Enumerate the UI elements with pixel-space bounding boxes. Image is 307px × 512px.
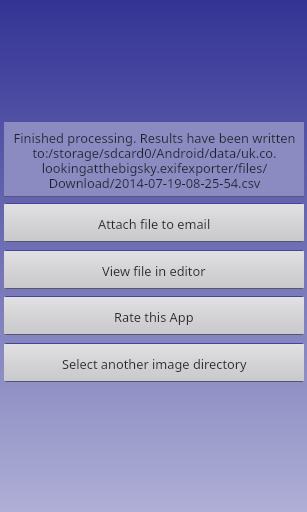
staticText: Select another image directory: [62, 355, 247, 372]
staticText: Finished processing. Results have been w…: [13, 129, 296, 191]
staticText: Attach file to email: [98, 215, 211, 232]
staticText: View file in editor: [102, 262, 206, 279]
staticText: Rate this App: [114, 308, 194, 325]
button[interactable]: Attach file to email: [4, 203, 304, 242]
button[interactable]: View file in editor: [4, 250, 304, 289]
button[interactable]: Select another image directory: [4, 343, 304, 382]
button[interactable]: Rate this App: [4, 296, 304, 335]
